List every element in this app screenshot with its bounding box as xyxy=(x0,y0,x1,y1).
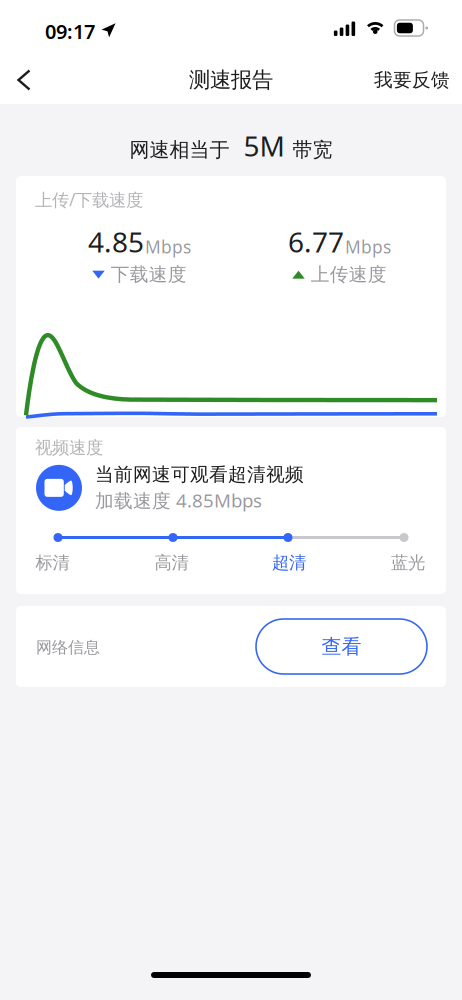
staticText: 蓝光 xyxy=(391,552,425,573)
staticText: 标清 xyxy=(35,552,69,573)
staticText: 5M xyxy=(243,127,284,164)
button[interactable]: 查看 xyxy=(256,619,427,674)
staticText: 6.77 xyxy=(288,223,344,260)
staticText: 当前网速可观看 xyxy=(95,463,228,486)
staticText: Mbps xyxy=(345,235,391,258)
staticText: 我要反馈 xyxy=(374,68,450,91)
staticText: 网速相当于 xyxy=(129,137,229,162)
staticText: 视频速度 xyxy=(35,437,103,458)
staticText: 超清 xyxy=(272,552,306,573)
button[interactable]: Back xyxy=(0,56,48,104)
staticText: 带宽 xyxy=(292,137,332,162)
staticText: 测速报告 xyxy=(189,67,273,93)
staticText: 网络信息 xyxy=(36,638,100,657)
staticText: 查看 xyxy=(321,634,361,659)
staticText: 超清视频 xyxy=(228,463,304,486)
staticText: 上传速度 xyxy=(311,263,387,286)
staticText: Mbps xyxy=(145,235,191,258)
staticText: 09:17 xyxy=(45,18,95,45)
button[interactable]: 我要反馈 xyxy=(374,56,462,104)
staticText: 下载速度 xyxy=(111,263,187,286)
staticText: 4.85 xyxy=(88,223,144,260)
staticText: 上传/下载速度 xyxy=(35,188,143,211)
staticText: 高清 xyxy=(154,552,188,573)
staticText: 加载速度 4.85Mbps xyxy=(95,488,262,513)
